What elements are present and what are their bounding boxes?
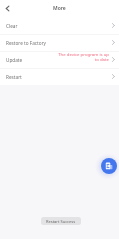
staticText: Clear (6, 23, 18, 29)
button[interactable]: Documents (101, 158, 117, 174)
button[interactable]: Back (0, 0, 15, 17)
button[interactable]: Update (0, 51, 119, 68)
button[interactable]: Restore to Factory (0, 34, 119, 51)
staticText: The device program is up to date (58, 51, 109, 62)
staticText: More (53, 5, 66, 12)
button[interactable]: Restart (0, 68, 119, 85)
staticText: Update (6, 57, 23, 63)
staticText: Restart (6, 74, 22, 80)
staticText: Restart Success (46, 219, 76, 224)
button[interactable]: Clear (0, 17, 119, 34)
staticText: Restore to Factory (6, 40, 46, 46)
